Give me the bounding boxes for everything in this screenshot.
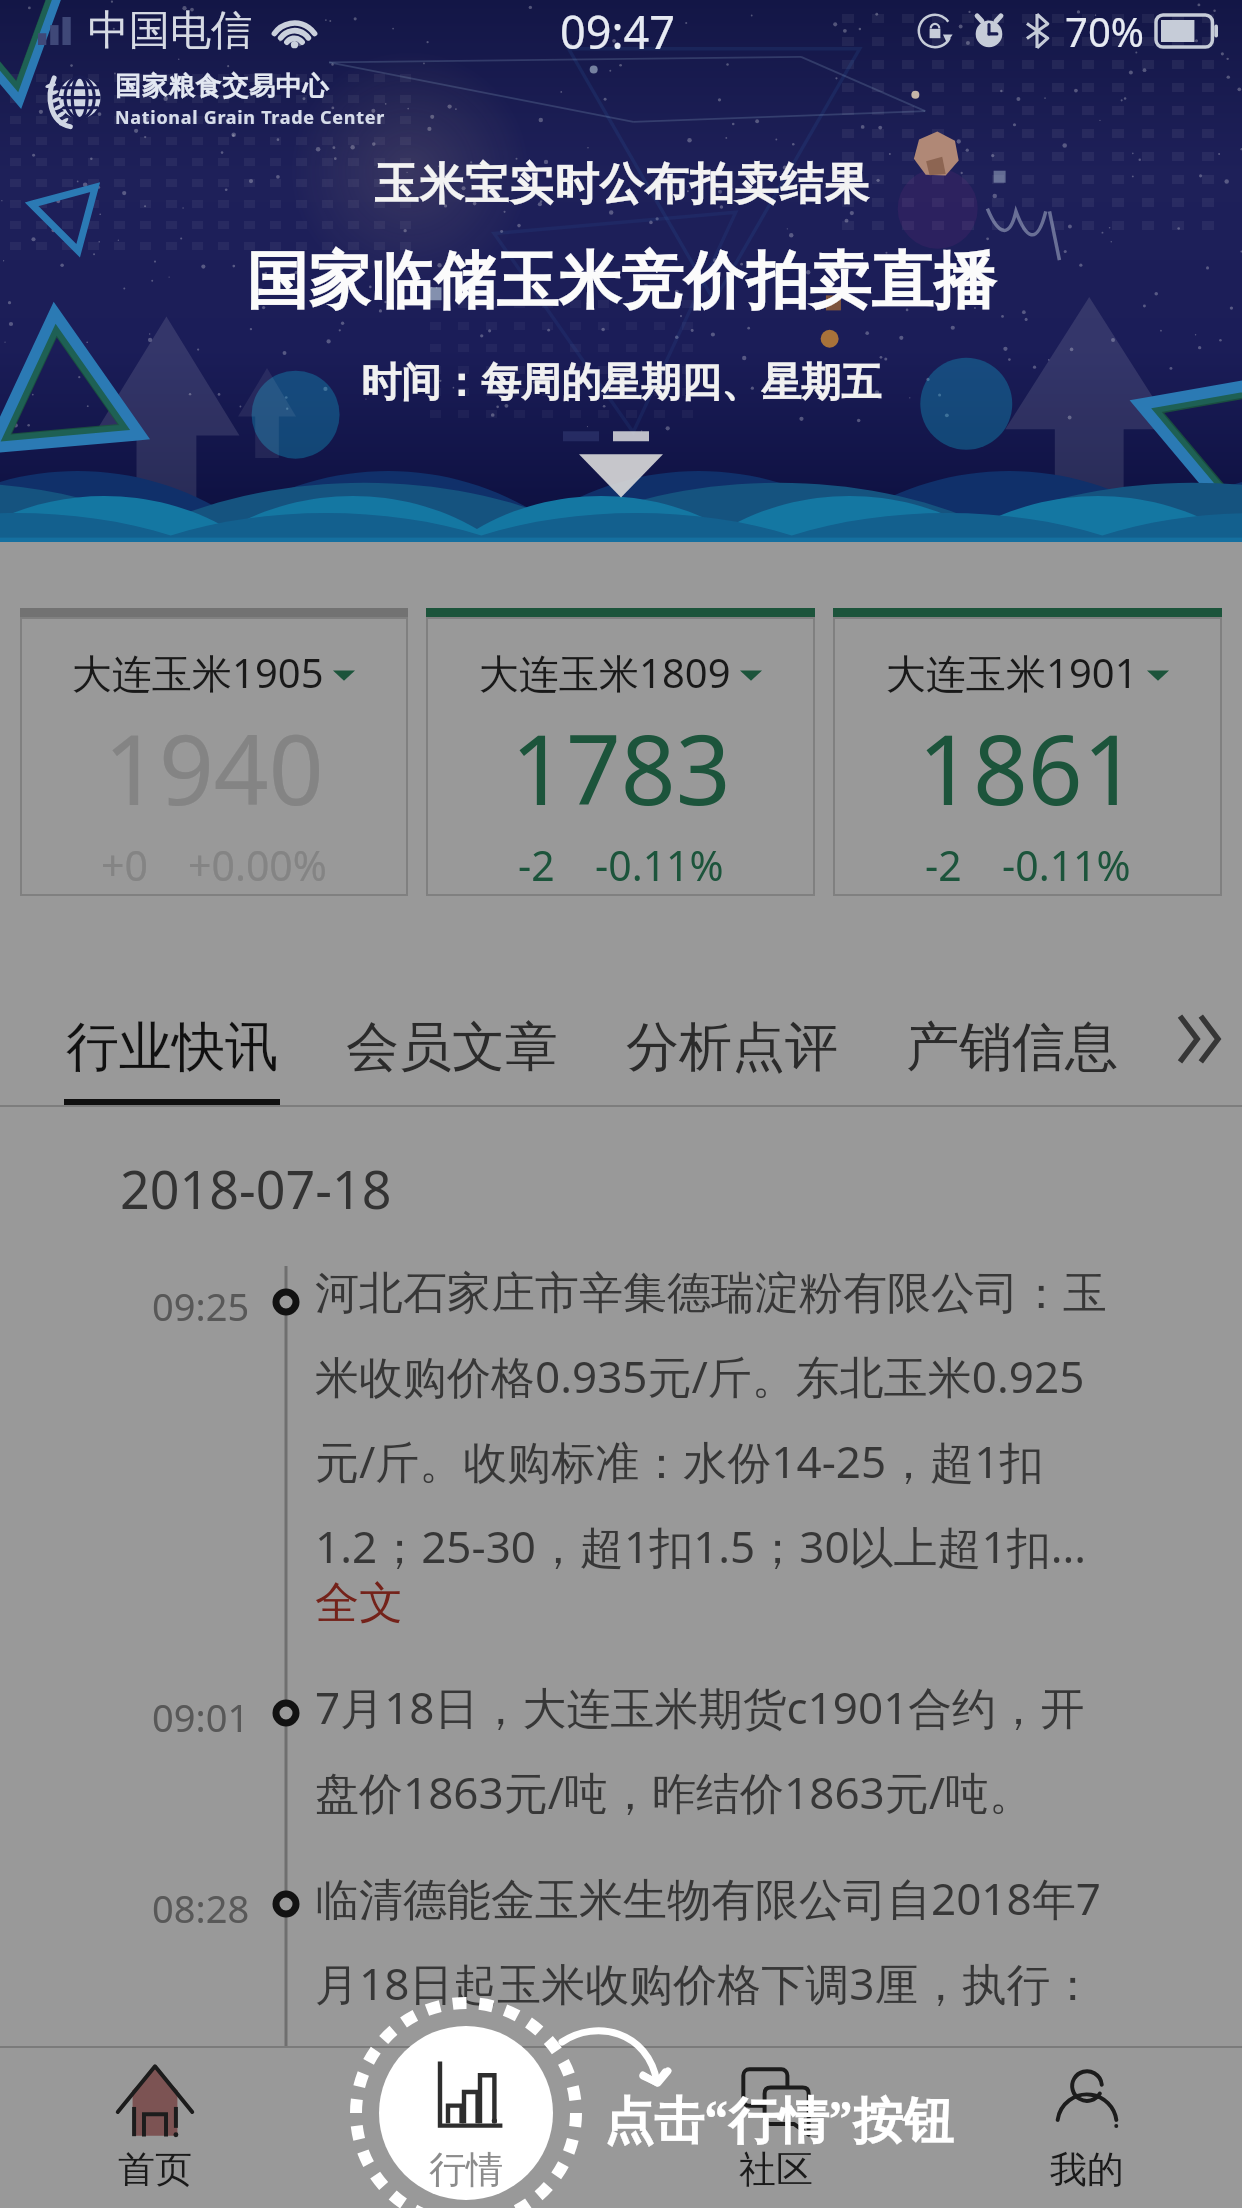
button[interactable]: 行业快讯	[64, 1014, 280, 1105]
staticText: 点击“行情”按钮	[604, 2085, 953, 2153]
staticText: 1861	[918, 702, 1138, 833]
staticText: 2018-07-18	[120, 1153, 392, 1224]
staticText: -0.11%	[595, 837, 724, 893]
staticText: 大连玉米1901	[886, 645, 1138, 700]
staticText: 行情	[429, 2146, 503, 2193]
staticText: 09:25	[152, 1280, 250, 1332]
button[interactable]: 行情	[310, 2048, 620, 2208]
button[interactable]: 社区	[620, 2048, 931, 2208]
staticText: 大连玉米1905	[72, 645, 324, 700]
staticText: 大连玉米1809	[479, 645, 731, 700]
staticText: 会员文章	[346, 1014, 558, 1081]
staticText: 时间：每周的星期四、星期五	[361, 357, 881, 407]
staticText: 临清德能金玉米生物有限公司自2018年7月18日起玉米收购价格下调3厘，执行：0…	[315, 1868, 1120, 2098]
button[interactable]: 分析点评	[624, 1014, 840, 1105]
staticText: 首页	[118, 2146, 192, 2193]
staticText: 我的	[1050, 2146, 1124, 2193]
button[interactable]: 09:25	[0, 1266, 1242, 1677]
button[interactable]: 08:28	[0, 1868, 1242, 2144]
staticText: 分析点评	[626, 1014, 838, 1081]
staticText: 1783	[511, 702, 731, 833]
button[interactable]: 大连玉米1901	[833, 608, 1222, 896]
staticText: -0.11%	[1002, 837, 1131, 893]
staticText: +0.00%	[188, 837, 327, 893]
staticText: 7月18日，大连玉米期货c1901合约，开盘价1863元/吨，昨结价1863元/…	[315, 1677, 1120, 1822]
button[interactable]: 产销信息	[904, 1014, 1120, 1105]
staticText: -2	[518, 837, 555, 893]
staticText: -2	[925, 837, 962, 893]
button[interactable]: 我的	[931, 2048, 1242, 2208]
staticText: 行业快讯	[66, 1014, 278, 1081]
button[interactable]: 大连玉米1905	[20, 608, 408, 896]
staticText: 08:28	[152, 1882, 250, 1934]
button[interactable]: 行情	[398, 2058, 534, 2193]
staticText: 国家粮食交易中心	[115, 70, 330, 103]
staticText: 09:47	[560, 1, 676, 62]
staticText: 中国电信	[88, 5, 252, 57]
staticText: 行情	[428, 2146, 502, 2193]
staticText: 产销信息	[906, 1014, 1118, 1081]
staticText: 09:01	[152, 1691, 250, 1743]
staticText: 河北石家庄市辛集德瑞淀粉有限公司：玉米收购价格0.935元/斤。东北玉米0.92…	[315, 1266, 1120, 1576]
staticText: 1940	[104, 702, 324, 833]
button[interactable]: 全文	[315, 1576, 403, 1631]
staticText: +0	[101, 837, 148, 893]
staticText: 社区	[739, 2146, 813, 2193]
staticText: 玉米宝实时公布拍卖结果	[374, 157, 869, 212]
staticText: 70%	[1065, 4, 1144, 58]
button[interactable]: 更多栏目	[1178, 1012, 1218, 1105]
button[interactable]: 09:01	[0, 1677, 1242, 1868]
button[interactable]: 会员文章	[344, 1014, 560, 1105]
button[interactable]: 首页	[0, 2048, 310, 2208]
staticText: 国家临储玉米竞价拍卖直播	[246, 242, 996, 320]
button[interactable]: 大连玉米1809	[426, 608, 815, 896]
staticText: National Grain Trade Center	[115, 105, 385, 130]
